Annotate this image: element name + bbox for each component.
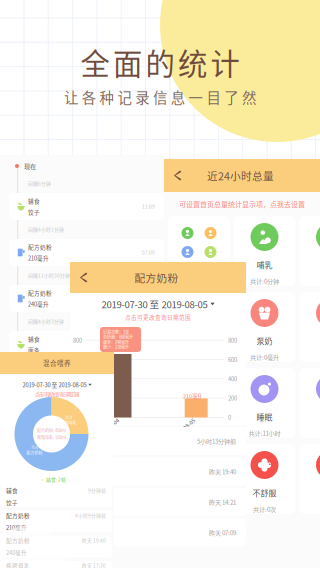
button[interactable]: Back	[164, 160, 181, 190]
button[interactable]: 昨天 19:40	[70, 457, 246, 485]
button[interactable]: 瓶喂母乳	[9, 423, 164, 450]
staticText: 配方奶粉	[28, 381, 52, 389]
staticText: 昨天 19:40	[82, 537, 106, 544]
staticText: 配方奶粉	[6, 536, 30, 544]
staticText: 饺子	[28, 208, 40, 216]
staticText: 0	[228, 413, 231, 421]
staticText: 点击可更改查询日期范围	[35, 391, 79, 397]
staticText: 240毫升	[28, 300, 49, 308]
staticText: 150毫升	[28, 438, 49, 446]
button[interactable]: 配方奶粉	[0, 536, 112, 557]
staticText: 记录次数：3次	[103, 329, 129, 335]
staticText: 哺乳	[256, 259, 272, 271]
staticText: 瓶喂母乳	[28, 427, 52, 435]
staticText: 间隔11小时30分钟	[28, 272, 70, 279]
staticText: 08-05	[182, 420, 196, 428]
staticText: 800	[228, 336, 237, 344]
staticText: 0	[73, 413, 76, 421]
staticText: 瓶喂母乳: 150ml	[37, 434, 66, 440]
button[interactable]: 瓶喂母乳	[0, 561, 112, 568]
staticText: 混合喂养	[43, 358, 71, 368]
staticText: • 辅食: 2顿	[40, 476, 66, 483]
staticText: 配方奶粉	[134, 270, 178, 285]
button[interactable]: 泵奶	[233, 292, 295, 362]
button[interactable]: 昨天 14:21	[70, 488, 246, 516]
staticText: 饺子	[6, 498, 18, 507]
staticText: 配方奶粉	[26, 450, 42, 456]
button[interactable]: 睡眠	[233, 368, 295, 438]
staticText: 间隔4小时1分钟	[28, 226, 64, 233]
button[interactable]: 可设置首页总量统计显示项，点我去设置	[179, 192, 305, 216]
staticText: 200	[73, 394, 82, 402]
button[interactable]: 2019-07-30 至 2019-08-05	[0, 378, 114, 400]
staticText: 最多：240毫升	[103, 339, 129, 345]
staticText: 点击可更改查询日期范围	[125, 313, 191, 321]
staticText: 辅食	[6, 486, 18, 494]
staticText: 200	[228, 394, 237, 402]
staticText: 08-04	[106, 420, 120, 428]
staticText: 5小时13分钟前	[197, 437, 236, 445]
staticText: 昨天 07:09	[209, 528, 236, 537]
staticText: 210毫升	[183, 392, 202, 400]
button[interactable]: 配方奶粉	[9, 239, 164, 266]
button[interactable]	[299, 368, 320, 438]
staticText: 辅食	[28, 335, 40, 343]
button[interactable]: 哺乳	[233, 216, 295, 286]
staticText: 昨天 17:30	[82, 562, 106, 568]
staticText: 昨天 19:40	[209, 467, 236, 476]
staticText: 面条	[28, 346, 40, 354]
staticText: 配方奶粉: 450ml	[37, 427, 66, 433]
button[interactable]: 配方奶粉	[9, 377, 164, 404]
staticText: 配方奶粉	[28, 289, 52, 297]
button[interactable]	[168, 368, 230, 438]
staticText: 400	[228, 375, 237, 383]
button[interactable]	[299, 444, 320, 514]
staticText: 昨天 14:21	[209, 498, 236, 506]
staticText: 配方奶粉	[28, 243, 52, 251]
staticText: 瓶喂母乳	[60, 420, 76, 426]
button[interactable]: Statistics settings	[168, 216, 230, 286]
staticText: 最少：210毫升	[103, 344, 129, 350]
staticText: 睡眠	[256, 411, 272, 423]
staticText: 11:09	[142, 203, 155, 210]
staticText: 共计:0分钟	[250, 277, 279, 285]
button[interactable]	[168, 444, 230, 514]
staticText: 现在	[24, 162, 36, 170]
staticText: 共计:0毫升	[250, 353, 279, 361]
button[interactable]	[299, 292, 320, 362]
staticText: 共计:11小时	[248, 429, 280, 437]
button[interactable]	[168, 292, 230, 362]
staticText: 泵奶	[256, 335, 272, 347]
staticText: 全面的统计	[80, 41, 239, 83]
staticText: 配方奶粉	[6, 511, 30, 519]
button[interactable]: 配方奶粉	[9, 285, 164, 312]
button[interactable]: Back	[70, 262, 87, 292]
staticText: 180毫升	[28, 392, 49, 400]
staticText: 9分钟前	[88, 487, 106, 494]
staticText: 让各种记录信息一目了然	[64, 87, 256, 107]
staticText: 210毫升	[28, 254, 49, 262]
button[interactable]: 不舒服	[233, 444, 295, 514]
button[interactable]: 辅食	[9, 193, 164, 220]
button[interactable]: 配方奶粉	[0, 511, 112, 532]
staticText: 2019-07-30 至 2019-08-05	[101, 297, 207, 311]
staticText: 瓶喂母乳	[6, 561, 30, 568]
button[interactable]: 2019-07-30 至 2019-08-05	[70, 297, 246, 321]
button[interactable]: 5小时13分钟前	[70, 427, 246, 455]
staticText: 可设置首页总量统计显示项，点我去设置	[179, 199, 305, 209]
button[interactable]: 辅食	[0, 486, 112, 507]
staticText: 210毫升	[6, 523, 27, 532]
button[interactable]	[299, 216, 320, 286]
staticText: 间隔6分钟	[28, 180, 51, 187]
staticText: 间隔1小时20分钟	[28, 410, 67, 417]
staticText: 2019-07-30 至 2019-08-05	[22, 381, 86, 389]
staticText: 间隔4小时3分钟	[28, 318, 64, 325]
staticText: 4小时9分钟前	[75, 512, 106, 519]
button[interactable]: 昨天 07:09	[70, 518, 246, 546]
staticText: 400	[73, 375, 82, 383]
staticText: 共计:0次	[253, 505, 276, 513]
staticText: 600	[228, 355, 237, 364]
button[interactable]: 辅食	[9, 331, 164, 358]
staticText: 不舒服	[252, 487, 276, 499]
